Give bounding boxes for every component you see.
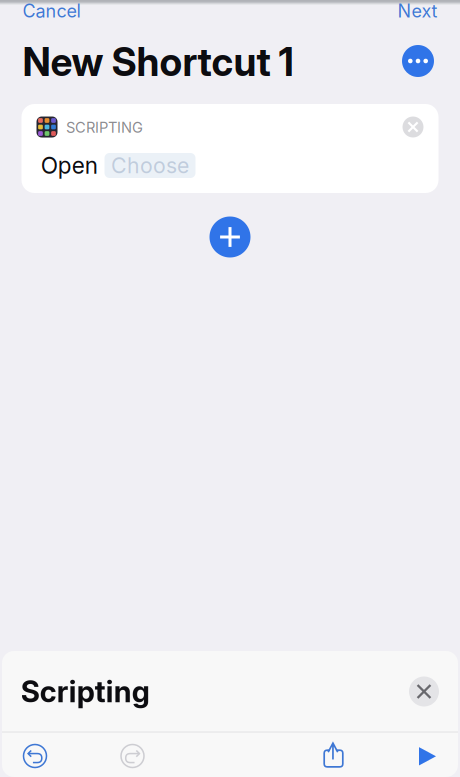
button[interactable]: Add action [209,216,250,257]
staticText: Scripting [21,674,150,709]
button[interactable]: Share [305,733,361,777]
button[interactable]: Cancel [16,0,86,25]
staticText: Choose [111,153,189,178]
button[interactable]: Close [409,676,439,706]
staticText: New Shortcut 1 [22,39,293,85]
button[interactable]: Redo [104,734,160,777]
staticText: Cancel [22,0,80,22]
staticText: Open [41,152,98,179]
staticText: Next [397,0,437,22]
button[interactable]: SCRIPTING [21,104,438,193]
staticText: SCRIPTING [66,119,143,136]
button[interactable]: Undo [7,734,63,777]
button[interactable]: Run [399,734,455,777]
button[interactable]: More options [402,45,434,77]
button[interactable]: Next [391,0,443,25]
